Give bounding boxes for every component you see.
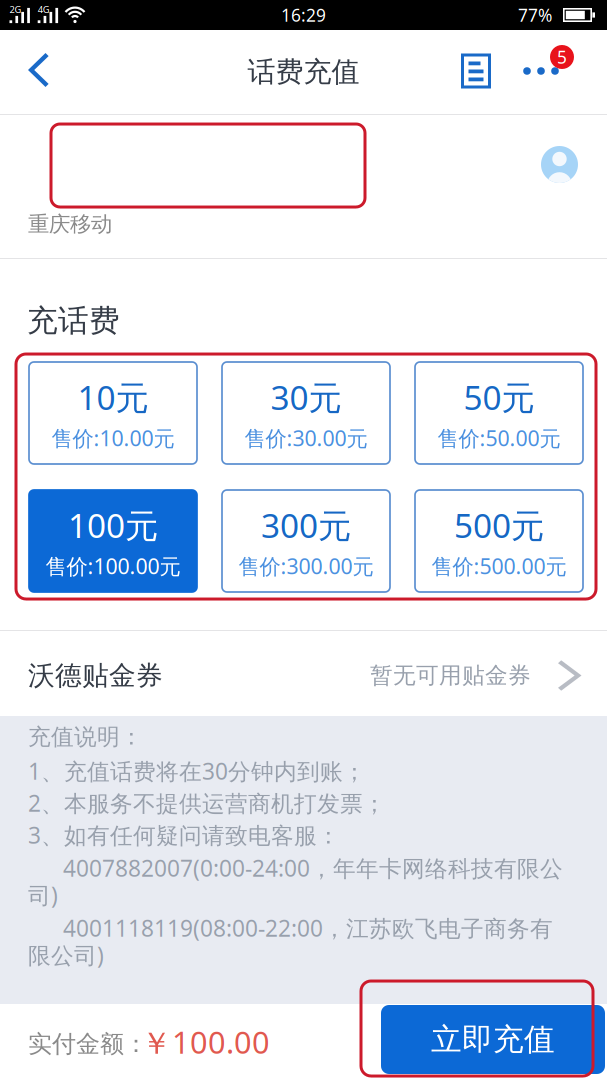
staticText: 10元 [77, 375, 148, 419]
staticText: 充值说明： [28, 723, 143, 751]
staticText: 重庆移动 [28, 211, 112, 237]
staticText: 充话费 [27, 302, 120, 340]
staticText: 售价:10.00元 [51, 424, 174, 452]
staticText: 售价:300.00元 [238, 552, 373, 580]
staticText: 2、本服务不提供运营商机打发票； [28, 788, 386, 818]
staticText: 4001118119(08:00-22:00，江苏欧飞电子商务有 [63, 913, 553, 943]
staticText: 16:29 [281, 3, 326, 26]
staticText: 话费充值 [247, 55, 359, 89]
staticText: 售价:500.00元 [431, 552, 566, 580]
button[interactable]: 10元 [29, 362, 197, 464]
button[interactable]: 500元 [415, 490, 583, 592]
staticText: 售价:30.00元 [244, 424, 367, 452]
staticText: 77% [518, 3, 552, 26]
button[interactable]: 100元 [29, 490, 197, 592]
staticText: 4007882007(0:00-24:00，年年卡网络科技有限公 [63, 853, 563, 883]
staticText: 售价:100.00元 [45, 552, 180, 580]
staticText: 500元 [454, 503, 544, 547]
button[interactable]: Back [6, 40, 70, 100]
staticText: 立即充值 [431, 1021, 555, 1058]
button[interactable]: More options [522, 27, 588, 87]
button[interactable]: 300元 [222, 490, 390, 592]
staticText: ￥100.00 [141, 1022, 270, 1062]
staticText: 1、充值话费将在30分钟内到账； [28, 756, 366, 786]
staticText: 2G [9, 3, 21, 16]
staticText: 4G [38, 3, 50, 16]
button[interactable]: 沃德贴金券 [0, 633, 607, 718]
staticText: 实付金额： [28, 1029, 148, 1059]
button[interactable]: 30元 [222, 362, 390, 464]
staticText: 沃德贴金券 [28, 659, 163, 692]
staticText: 3、如有任何疑问请致电客服： [28, 820, 340, 850]
staticText: 司) [28, 880, 58, 910]
staticText: 5 [557, 45, 567, 68]
staticText: 100元 [68, 503, 158, 547]
staticText: 暂无可用贴金券 [370, 662, 531, 689]
staticText: 300元 [261, 503, 351, 547]
button[interactable]: 50元 [415, 362, 583, 464]
staticText: 限公司) [28, 940, 104, 970]
button[interactable]: Order records [448, 41, 504, 101]
staticText: 30元 [270, 375, 341, 419]
staticText: 售价:50.00元 [437, 424, 560, 452]
staticText: 50元 [463, 375, 534, 419]
button[interactable]: 立即充值 [381, 1005, 605, 1074]
